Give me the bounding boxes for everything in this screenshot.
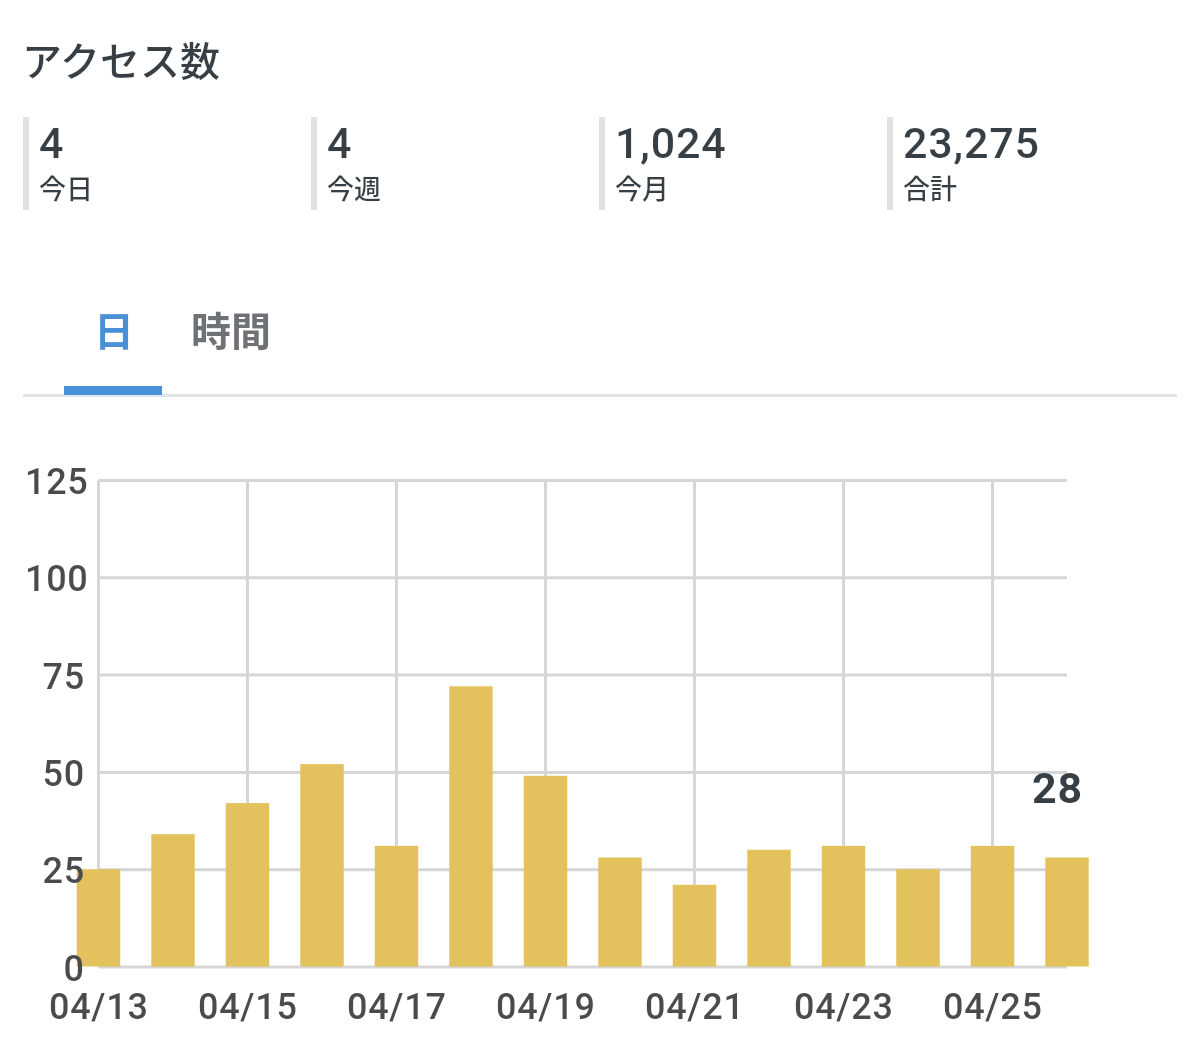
staticText: 4 <box>327 118 353 168</box>
staticText: 日 <box>94 300 134 358</box>
staticText: 合計 <box>903 168 957 207</box>
staticText: アクセス数 <box>22 30 220 88</box>
staticText: 23,275 <box>903 118 1040 168</box>
staticText: 1,024 <box>615 118 727 168</box>
staticText: 今月 <box>615 168 669 207</box>
staticText: 4 <box>39 118 65 168</box>
staticText: 今日 <box>39 168 93 207</box>
staticText: 今週 <box>327 168 381 207</box>
staticText: 時間 <box>191 300 271 358</box>
button[interactable]: 時間 <box>172 295 289 363</box>
button[interactable]: 日 <box>55 295 172 363</box>
